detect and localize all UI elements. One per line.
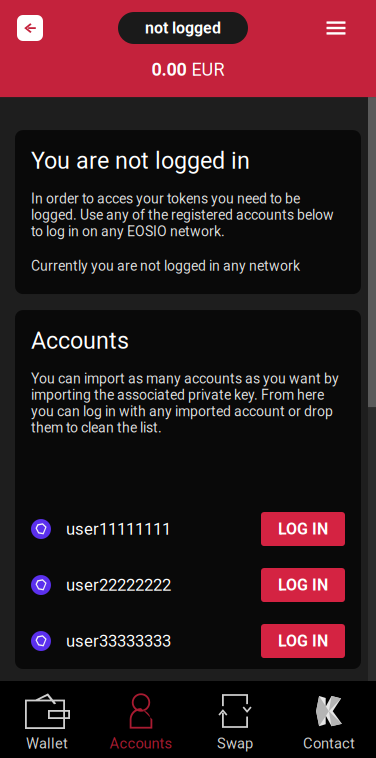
staticText: user22222222 [66,575,171,595]
staticText: You are not logged in [31,147,250,174]
button[interactable]: Contact [282,681,376,758]
button[interactable]: Back [17,15,43,41]
staticText: 0.00 [151,59,186,80]
button[interactable]: LOG IN [261,624,345,658]
staticText: Currently you are not logged in any netw… [31,258,300,274]
staticText: LOG IN [278,576,328,594]
staticText: not logged [145,19,221,37]
staticText: EUR [191,59,224,80]
staticText: Contact [303,735,355,752]
staticText: user11111111 [66,519,171,539]
staticText: Swap [217,735,253,752]
button[interactable]: LOG IN [261,568,345,602]
button[interactable]: Menu [323,15,349,41]
button[interactable]: Swap [188,681,282,758]
button[interactable]: LOG IN [261,512,345,546]
staticText: user33333333 [66,631,171,651]
staticText: LOG IN [278,520,328,538]
staticText: Accounts [31,327,129,354]
button[interactable]: Accounts [94,681,188,758]
staticText: LOG IN [278,632,328,650]
staticText: Wallet [26,735,68,752]
button[interactable]: not logged [118,12,248,44]
button[interactable]: Wallet [0,681,94,758]
staticText: You can import as many accounts as you w… [31,370,339,436]
staticText: Accounts [109,735,172,752]
staticText: In order to acces your tokens you need t… [31,190,334,240]
